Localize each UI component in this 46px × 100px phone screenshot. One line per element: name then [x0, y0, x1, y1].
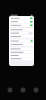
button[interactable] [9, 32, 34, 35]
button[interactable] [9, 28, 34, 31]
button[interactable] [9, 54, 34, 57]
button[interactable] [9, 51, 34, 54]
button[interactable] [9, 20, 34, 23]
button[interactable] [9, 57, 34, 60]
button[interactable] [9, 17, 34, 20]
button[interactable] [9, 35, 34, 38]
button[interactable] [9, 24, 34, 27]
button[interactable]: App [20, 87, 25, 92]
button[interactable] [9, 39, 34, 43]
button[interactable] [9, 43, 34, 46]
button[interactable] [9, 47, 34, 50]
